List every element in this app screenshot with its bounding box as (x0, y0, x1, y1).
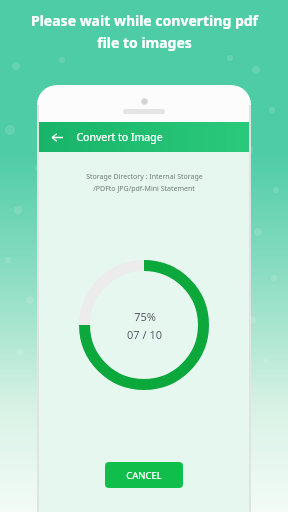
button[interactable]: CANCEL (105, 462, 183, 488)
staticText: Convert to Image (76, 130, 163, 144)
staticText: file to images (97, 33, 192, 52)
staticText: Storage Directory : Internal Storage (86, 172, 203, 182)
staticText: /PDFto JPG/pdf-Mini Statement (93, 184, 195, 194)
button[interactable]: Back (47, 127, 67, 147)
staticText: 07 / 10 (127, 327, 162, 342)
staticText: Please wait while converting pdf (31, 11, 258, 30)
staticText: CANCEL (126, 469, 162, 482)
staticText: 75% (134, 309, 156, 324)
